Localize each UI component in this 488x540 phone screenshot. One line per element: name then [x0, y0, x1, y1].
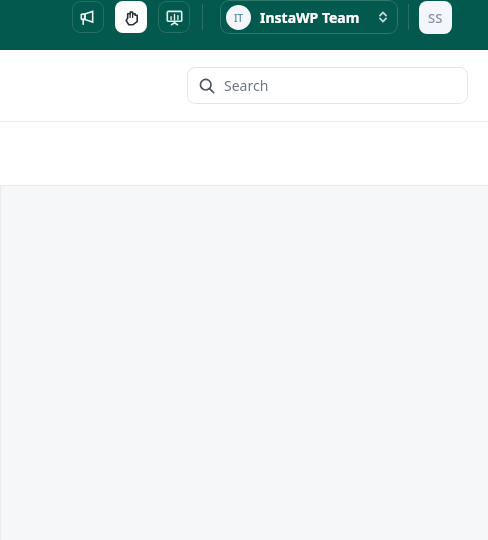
staticText: SS [428, 9, 443, 27]
staticText: IT [234, 11, 244, 25]
button[interactable]: Search [187, 67, 468, 104]
button[interactable]: IT [220, 0, 398, 34]
staticText: InstaWP Team [260, 8, 360, 27]
button[interactable]: Reports [158, 1, 190, 33]
staticText: Search [224, 76, 269, 95]
button[interactable]: Announcements [72, 1, 104, 33]
button[interactable]: Profile SS [419, 1, 452, 34]
button[interactable]: Pointer [115, 1, 147, 33]
